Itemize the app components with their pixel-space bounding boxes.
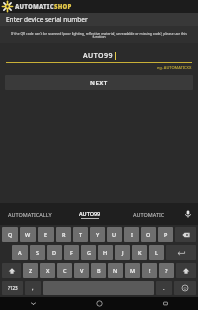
staticText: S: [36, 249, 40, 256]
button[interactable]: Q: [2, 227, 18, 242]
staticText: T: [79, 231, 83, 238]
button[interactable]: T: [73, 227, 88, 242]
button[interactable]: O: [141, 227, 156, 242]
button[interactable]: AUTOMATICALLY: [0, 203, 60, 225]
button[interactable]: Recents: [132, 297, 198, 310]
button[interactable]: NEXT: [5, 75, 193, 90]
staticText: W: [25, 231, 31, 238]
staticText: X: [46, 267, 50, 274]
button[interactable]: N: [108, 263, 123, 278]
button[interactable]: A: [12, 245, 28, 260]
button[interactable]: I: [124, 227, 139, 242]
staticText: eg. AUTOMATICXX: [157, 65, 192, 70]
staticText: P: [164, 231, 168, 238]
staticText: AUTOMATIC: [133, 211, 165, 218]
staticText: Z: [29, 267, 33, 274]
button[interactable]: !: [142, 263, 157, 278]
button[interactable]: S: [30, 245, 45, 260]
staticText: SHOP: [54, 3, 72, 11]
button[interactable]: H: [98, 245, 113, 260]
button[interactable]: J: [115, 245, 130, 260]
staticText: K: [138, 249, 142, 256]
button[interactable]: Voice input: [178, 203, 198, 225]
staticText: Q: [8, 231, 13, 238]
button[interactable]: D: [47, 245, 62, 260]
button[interactable]: Home: [66, 297, 132, 310]
staticText: NEXT: [90, 79, 108, 87]
button[interactable]: F: [64, 245, 79, 260]
staticText: H: [103, 249, 108, 256]
staticText: O: [146, 231, 151, 238]
button[interactable]: Y: [90, 227, 105, 242]
button[interactable]: P: [158, 227, 173, 242]
staticText: If the QR code can't be scanned (poor li…: [6, 31, 192, 39]
button[interactable]: .: [156, 281, 172, 295]
staticText: R: [62, 231, 66, 238]
button[interactable]: ,: [25, 281, 41, 295]
staticText: I: [131, 231, 133, 238]
button[interactable]: L: [149, 245, 164, 260]
button[interactable]: G: [81, 245, 96, 260]
staticText: E: [44, 231, 48, 238]
staticText: M: [130, 267, 136, 274]
button[interactable]: AUTO99: [6, 50, 192, 62]
button[interactable]: C: [57, 263, 72, 278]
button[interactable]: W: [20, 227, 36, 242]
button[interactable]: AUTOMATIC: [119, 203, 178, 225]
button[interactable]: Shift: [176, 263, 196, 278]
staticText: AUTO99: [83, 51, 114, 61]
button[interactable]: R: [56, 227, 71, 242]
button[interactable]: B: [91, 263, 106, 278]
staticText: AUTO99: [79, 210, 101, 217]
button[interactable]: Enter: [166, 245, 196, 260]
staticText: Y: [96, 231, 100, 238]
staticText: AUTOMATIC: [15, 3, 54, 11]
staticText: ?: [165, 267, 168, 274]
button[interactable]: AUTO99: [60, 203, 119, 225]
staticText: ,: [32, 284, 34, 292]
staticText: G: [87, 249, 91, 256]
button[interactable]: U: [107, 227, 122, 242]
button[interactable]: Shift: [2, 263, 21, 278]
button[interactable]: Back: [0, 297, 66, 310]
staticText: .: [163, 284, 165, 292]
button[interactable]: X: [40, 263, 55, 278]
staticText: B: [97, 267, 101, 274]
button[interactable]: K: [132, 245, 147, 260]
staticText: F: [70, 249, 73, 256]
button[interactable]: Emoji: [174, 281, 196, 295]
staticText: V: [80, 267, 84, 274]
staticText: Enter device serial number: [6, 15, 88, 24]
staticText: ?123: [8, 285, 18, 291]
staticText: A: [18, 249, 22, 256]
button[interactable]: Backspace: [175, 227, 196, 242]
staticText: C: [63, 267, 67, 274]
button[interactable]: ?123: [2, 281, 23, 295]
button[interactable]: ?: [159, 263, 174, 278]
button[interactable]: M: [125, 263, 140, 278]
button[interactable]: Z: [23, 263, 38, 278]
staticText: AUTOMATICALLY: [8, 211, 52, 218]
button[interactable]: E: [38, 227, 54, 242]
staticText: N: [113, 267, 118, 274]
staticText: L: [155, 249, 158, 256]
button[interactable]: V: [74, 263, 89, 278]
staticText: !: [149, 267, 151, 274]
staticText: D: [52, 249, 57, 256]
staticText: U: [112, 231, 117, 238]
staticText: J: [122, 249, 124, 256]
